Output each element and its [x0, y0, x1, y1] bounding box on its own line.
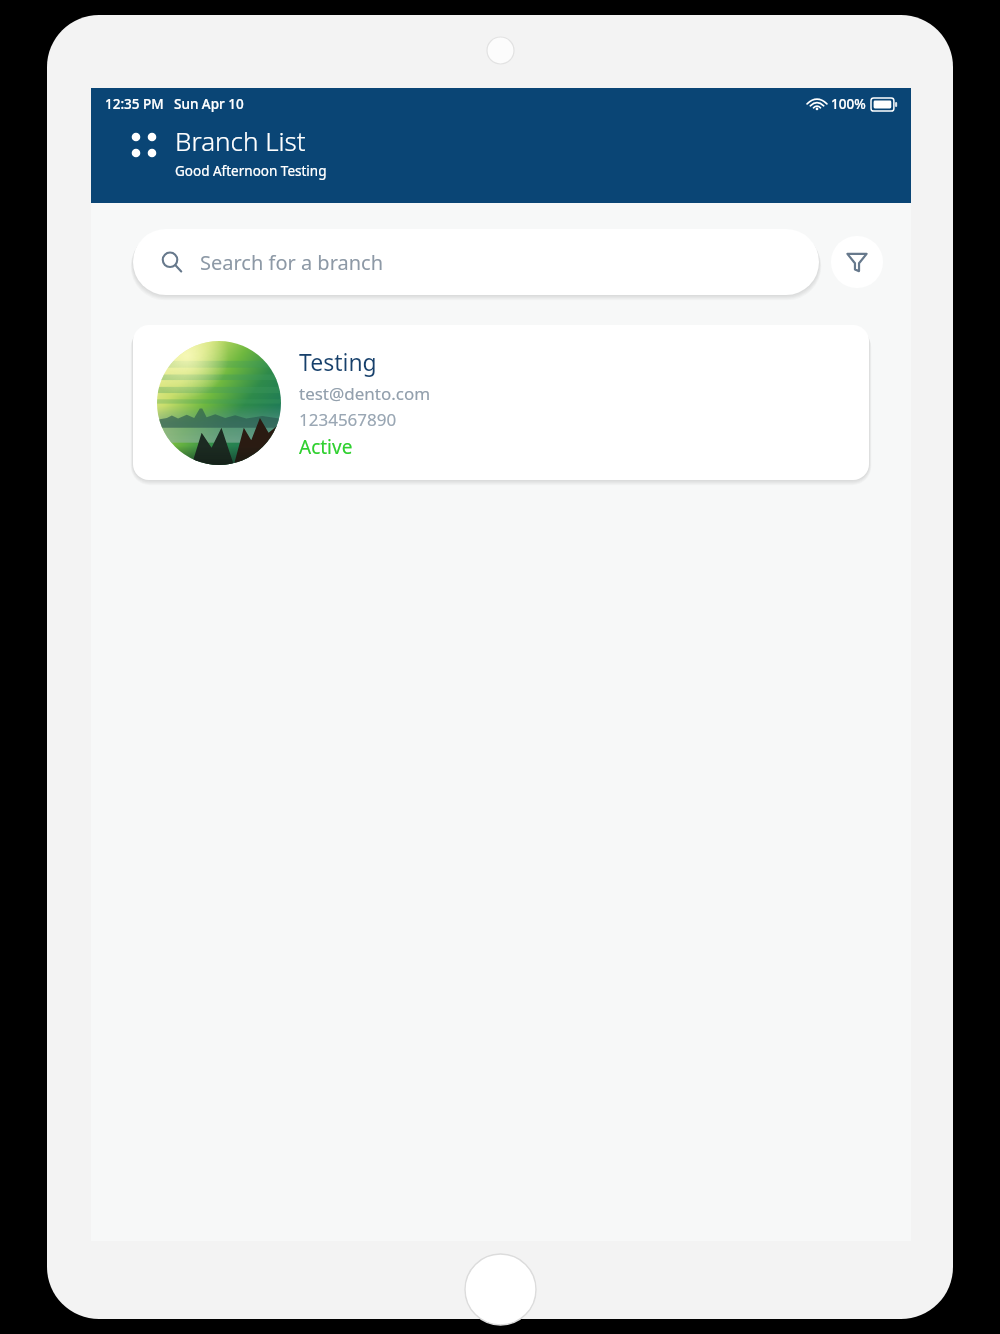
staticText: 100% — [831, 95, 866, 113]
other: Branch photo — [157, 341, 281, 465]
button[interactable]: Menu — [121, 122, 167, 168]
button[interactable]: Filter — [831, 236, 883, 288]
staticText: Testing — [299, 346, 377, 377]
staticText: Good Afternoon Testing — [175, 162, 327, 180]
staticText: Branch List — [175, 123, 306, 158]
staticText: Search for a branch — [200, 249, 384, 276]
staticText: Active — [299, 434, 353, 460]
other: Home — [465, 1254, 536, 1325]
staticText: test@dento.com — [299, 382, 431, 405]
staticText: 1234567890 — [299, 408, 397, 431]
staticText: 12:35 PM — [105, 95, 164, 113]
button[interactable]: Search — [133, 229, 819, 295]
other: Search — [161, 251, 183, 273]
staticText: Sun Apr 10 — [174, 95, 244, 113]
button[interactable]: Branch photo — [133, 325, 869, 480]
